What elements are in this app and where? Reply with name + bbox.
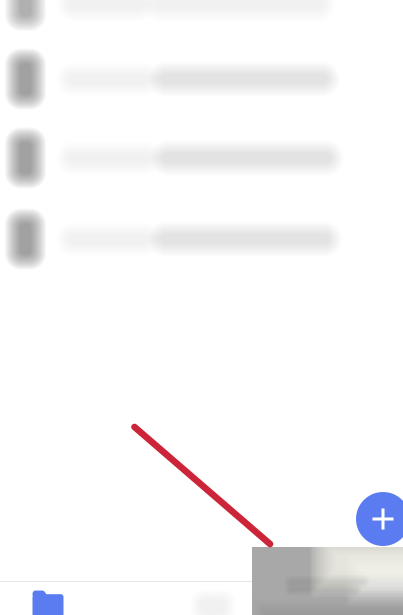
- button[interactable]: Shared: [163, 589, 263, 615]
- button[interactable]: Files: [0, 589, 98, 615]
- button[interactable]: New item: [356, 492, 403, 546]
